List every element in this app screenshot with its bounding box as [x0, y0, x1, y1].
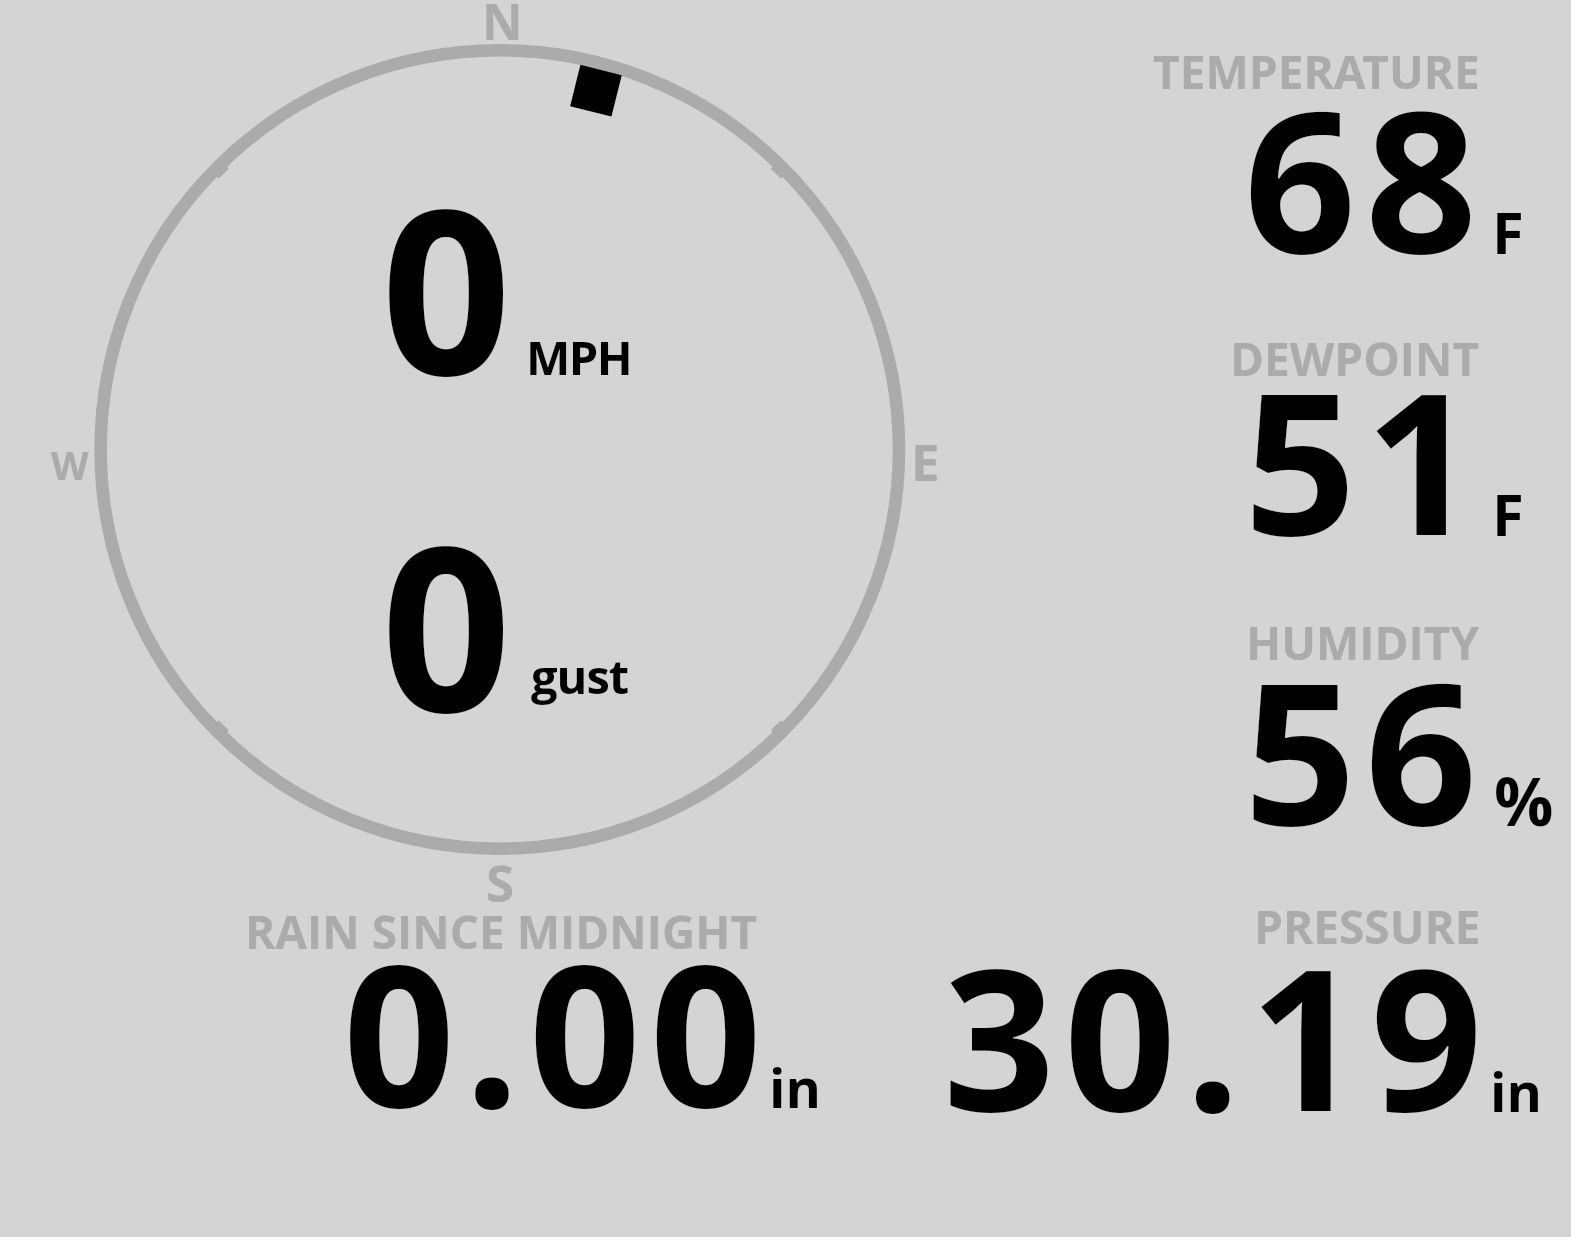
- button[interactable]: Rain since midnight 0.00 inches: [250, 900, 830, 1125]
- staticText: RAIN SINCE MIDNIGHT: [245, 900, 758, 963]
- staticText: in: [769, 1050, 821, 1124]
- staticText: S: [486, 847, 515, 916]
- staticText: %: [1494, 755, 1554, 845]
- staticText: N: [482, 0, 523, 55]
- staticText: TEMPERATURE: [1153, 40, 1480, 103]
- button[interactable]: Wind 0 MPH, gusting 0, from the north: [88, 37, 913, 862]
- staticText: F: [1492, 474, 1524, 553]
- staticText: 56: [1244, 616, 1486, 883]
- staticText: 51: [1244, 326, 1486, 593]
- staticText: W: [51, 438, 89, 491]
- staticText: E: [911, 426, 940, 495]
- staticText: in: [1490, 1054, 1542, 1128]
- button[interactable]: Pressure 30.19 inches: [900, 900, 1560, 1125]
- staticText: gust: [531, 644, 629, 708]
- button[interactable]: Humidity 56 percent: [1150, 613, 1571, 843]
- button[interactable]: Temperature 68 degrees Fahrenheit: [1150, 45, 1571, 275]
- staticText: F: [1492, 192, 1524, 271]
- button[interactable]: Dew point 51 degrees Fahrenheit: [1150, 330, 1571, 560]
- staticText: PRESSURE: [1254, 895, 1481, 958]
- staticText: HUMIDITY: [1246, 611, 1480, 674]
- staticText: 68: [1244, 44, 1486, 311]
- staticText: 0: [381, 131, 512, 441]
- staticText: MPH: [526, 325, 632, 389]
- staticText: 0.00: [343, 898, 771, 1165]
- staticText: DEWPOINT: [1230, 327, 1480, 390]
- staticText: 30.19: [943, 902, 1492, 1169]
- staticText: 0: [381, 468, 512, 778]
